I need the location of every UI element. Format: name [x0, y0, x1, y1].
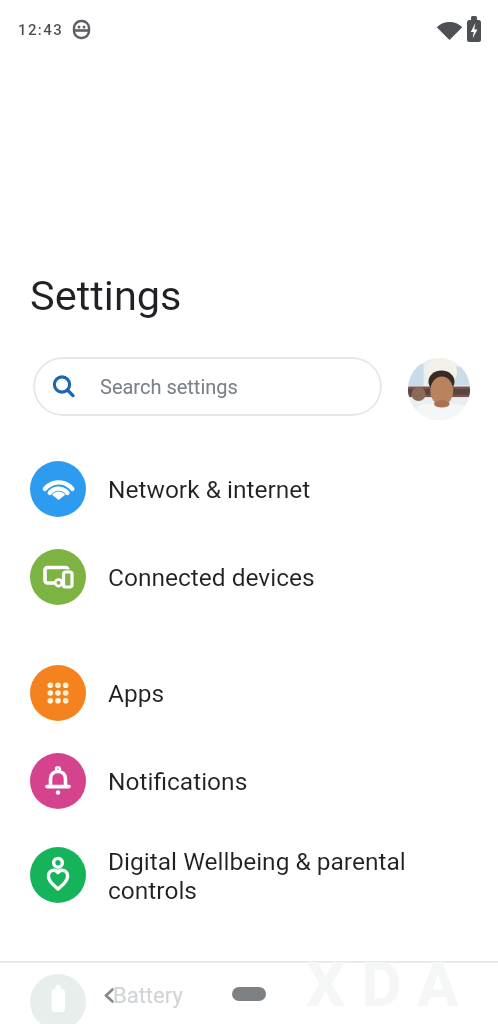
staticText: controls: [108, 876, 197, 903]
staticText: Settings: [30, 271, 182, 320]
staticText: Search settings: [100, 375, 238, 398]
button[interactable]: [408, 358, 470, 420]
staticText: XDA: [306, 948, 475, 1021]
staticText: Notifications: [108, 767, 248, 796]
staticText: Battery: [113, 983, 183, 1009]
staticText: Digital Wellbeing & parental: [108, 847, 406, 876]
button[interactable]: Notifications: [0, 753, 498, 809]
button[interactable]: Connected devices: [0, 549, 498, 605]
staticText: Apps: [108, 679, 165, 708]
staticText: 12:43: [18, 21, 64, 39]
staticText: Connected devices: [108, 563, 315, 592]
button[interactable]: [0, 963, 498, 1024]
button[interactable]: Search settings: [33, 357, 382, 416]
button[interactable]: Digital Wellbeing & parental: [0, 847, 498, 903]
button[interactable]: Apps: [0, 665, 498, 721]
button[interactable]: Network & internet: [0, 461, 498, 517]
staticText: Network & internet: [108, 475, 311, 504]
